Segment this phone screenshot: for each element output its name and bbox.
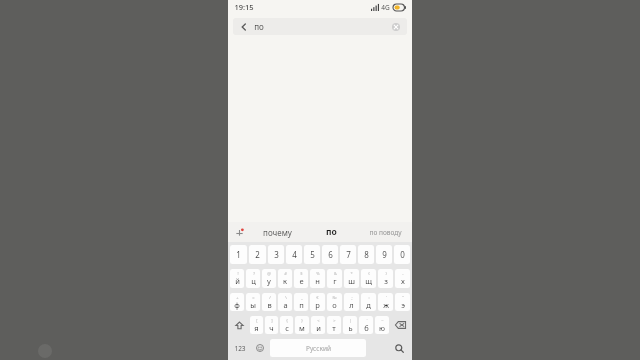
staticText: э — [401, 300, 405, 310]
staticText: ш — [348, 276, 355, 286]
staticText: я — [254, 323, 259, 333]
button[interactable]: @ — [262, 269, 276, 288]
staticText: 123 — [234, 344, 246, 353]
staticText: е — [299, 276, 304, 286]
staticText: л — [349, 300, 354, 310]
button[interactable]: по — [304, 222, 358, 242]
staticText: ю — [379, 323, 385, 333]
button[interactable]: 123 — [230, 338, 249, 358]
staticText: в — [267, 300, 272, 310]
button[interactable]: $ — [294, 269, 308, 288]
button[interactable]: ? — [246, 269, 260, 288]
staticText: № — [332, 295, 337, 300]
button[interactable]: | — [343, 316, 357, 334]
staticText: | — [349, 318, 352, 323]
staticText: почему — [263, 227, 292, 238]
staticText: $ — [300, 271, 303, 276]
staticText: д — [366, 300, 371, 310]
staticText: 7 — [346, 249, 351, 260]
staticText: # — [284, 271, 287, 276]
staticText: \ — [285, 295, 287, 300]
button[interactable]: / — [262, 293, 276, 311]
staticText: ? — [253, 271, 255, 276]
staticText: ' — [386, 295, 387, 300]
button[interactable]: * — [344, 269, 359, 288]
button[interactable]: = — [246, 293, 260, 311]
button[interactable]: по поводу — [358, 222, 412, 242]
button[interactable]: 9 — [376, 245, 392, 264]
button[interactable]: % — [310, 269, 325, 288]
button[interactable]: Backspace — [391, 316, 410, 334]
button[interactable]: € — [310, 293, 325, 311]
button[interactable]: Add — [228, 222, 250, 242]
button[interactable]: ' — [378, 293, 393, 311]
staticText: € — [316, 295, 319, 300]
staticText: по — [254, 21, 264, 32]
button[interactable]: > — [327, 316, 341, 334]
staticText: ; — [351, 295, 353, 300]
button[interactable]: Search — [389, 338, 410, 358]
button[interactable]: \ — [278, 293, 292, 311]
button[interactable]: Русский — [270, 339, 366, 357]
button[interactable]: + — [230, 293, 244, 311]
button[interactable]: < — [311, 316, 325, 334]
button[interactable]: # — [278, 269, 292, 288]
button[interactable]: 3 — [268, 245, 284, 264]
button[interactable]: { — [280, 316, 293, 334]
staticText: г — [333, 276, 337, 286]
staticText: п — [299, 300, 304, 310]
staticText: ч — [269, 323, 274, 333]
button[interactable]: 8 — [358, 245, 374, 264]
button[interactable]: Emoji — [251, 338, 268, 358]
staticText: 6 — [328, 249, 333, 260]
staticText: щ — [365, 276, 372, 286]
button[interactable]: [ — [250, 316, 263, 334]
staticText: н — [315, 276, 320, 286]
staticText: _ — [301, 295, 303, 300]
button[interactable]: 6 — [322, 245, 338, 264]
staticText: < — [317, 318, 320, 323]
button[interactable]: ! — [230, 269, 244, 288]
staticText: и — [316, 323, 321, 333]
button[interactable]: - — [395, 269, 410, 288]
staticText: / — [269, 295, 271, 300]
button[interactable]: № — [327, 293, 342, 311]
staticText: ф — [234, 300, 240, 310]
button[interactable]: 1 — [230, 245, 247, 264]
button[interactable]: ` — [359, 316, 373, 334]
staticText: 2 — [255, 249, 260, 260]
staticText: Русский — [306, 344, 331, 353]
button[interactable]: ( — [361, 269, 376, 288]
staticText: ц — [251, 276, 256, 286]
staticText: з — [384, 276, 388, 286]
button[interactable]: Clear — [390, 21, 402, 33]
button[interactable]: " — [395, 293, 410, 311]
button[interactable]: ; — [344, 293, 359, 311]
button[interactable]: : — [361, 293, 376, 311]
button[interactable]: Back — [233, 18, 407, 35]
button[interactable]: _ — [294, 293, 308, 311]
staticText: 0 — [400, 249, 405, 260]
staticText: о — [332, 300, 337, 310]
button[interactable]: Back — [238, 21, 249, 32]
button[interactable]: 4 — [286, 245, 302, 264]
staticText: у — [267, 276, 271, 286]
button[interactable]: ) — [378, 269, 393, 288]
button[interactable]: 0 — [394, 245, 410, 264]
staticText: й — [235, 276, 240, 286]
button[interactable]: & — [327, 269, 342, 288]
button[interactable]: 2 — [249, 245, 266, 264]
staticText: % — [316, 271, 320, 276]
button[interactable]: 5 — [304, 245, 320, 264]
staticText: х — [401, 276, 405, 286]
button[interactable]: } — [295, 316, 309, 334]
button[interactable]: ~ — [375, 316, 389, 334]
button[interactable]: 7 — [340, 245, 356, 264]
button[interactable]: Shift — [230, 316, 248, 334]
staticText: ` — [366, 318, 368, 323]
staticText: к — [283, 276, 287, 286]
button[interactable]: ] — [265, 316, 278, 334]
staticText: 5 — [310, 249, 315, 260]
button[interactable]: почему — [250, 222, 304, 242]
staticText: : — [368, 295, 370, 300]
